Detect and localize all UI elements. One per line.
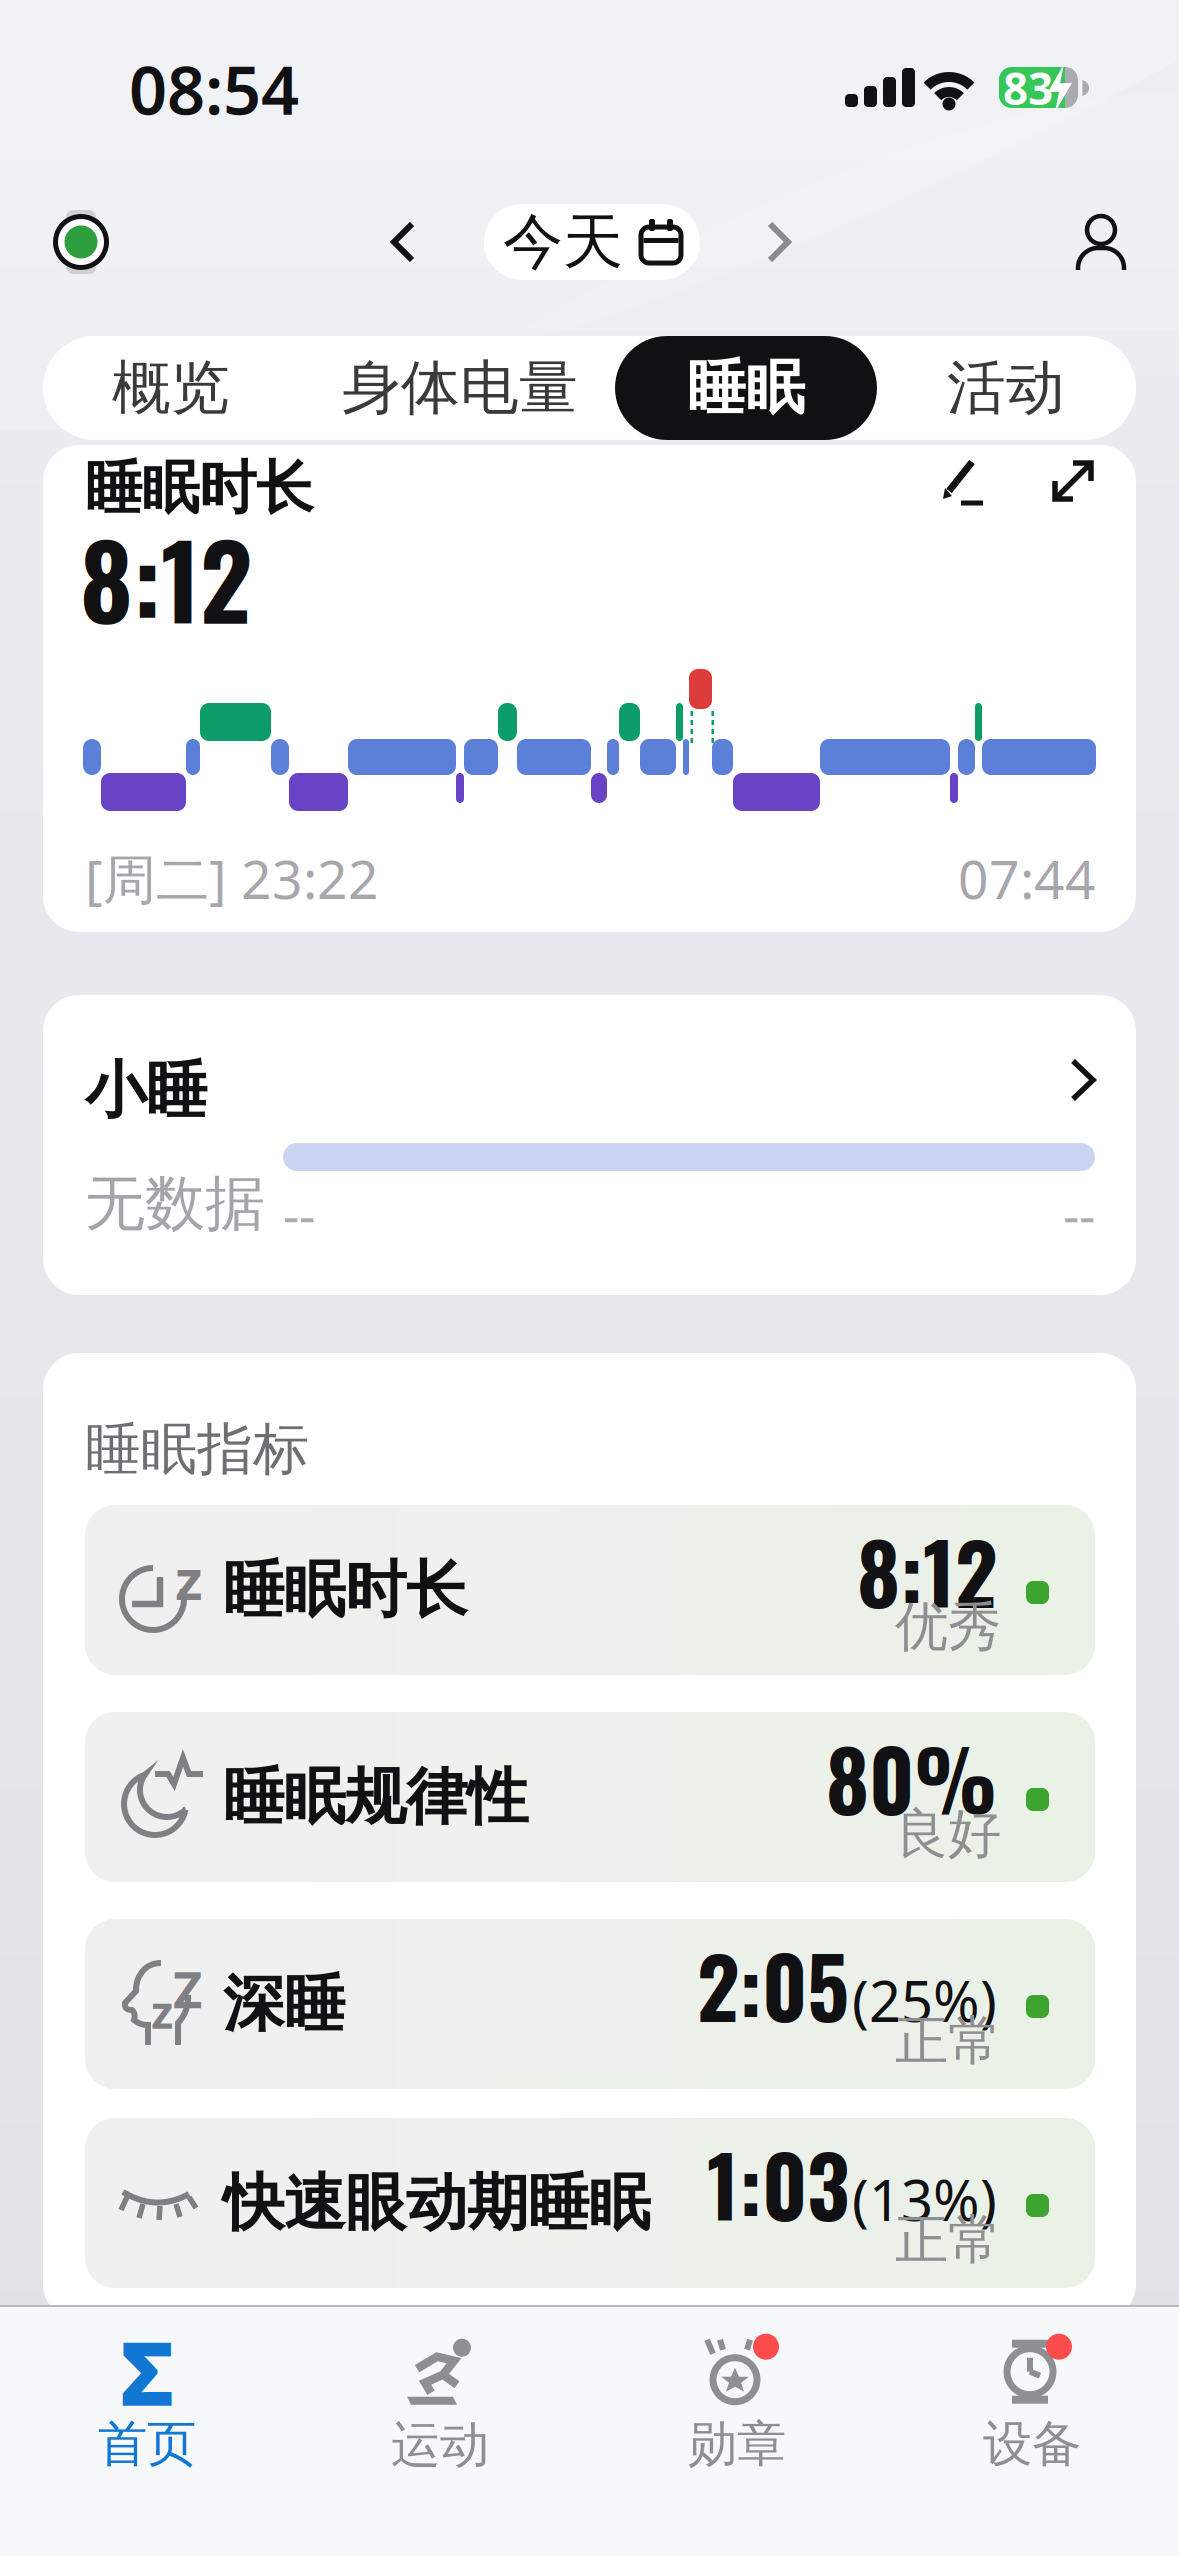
button[interactable]: 勋章 [617,2332,857,2482]
staticText: 正常 [895,2207,1001,2273]
staticText: (13%) [852,2162,997,2237]
button[interactable]: 身体电量 [310,336,610,440]
staticText: 睡眠时长 [223,1552,467,1628]
staticText: 概览 [112,352,230,424]
button[interactable]: 睡眠规律性 [85,1712,1095,1882]
button[interactable]: Edit [941,457,985,505]
staticText: 2:05 [697,1923,849,2046]
staticText: 8:12 [80,503,252,653]
staticText: Z [173,1955,202,2022]
button[interactable]: Σ [27,2332,267,2482]
staticText: 正常 [895,2008,1001,2074]
staticText: 8:12 [857,1509,997,1632]
button[interactable]: Expand [1051,459,1095,503]
button[interactable]: 活动 [886,336,1126,440]
staticText: 运动 [391,2415,489,2475]
button[interactable]: Next day [766,222,790,262]
staticText: -- [283,1181,315,1248]
button[interactable]: 今天 [484,204,700,280]
button[interactable]: Profile [1077,216,1125,272]
button[interactable]: 快速眼动期睡眠 [85,2118,1095,2288]
button[interactable]: 小睡 [43,995,1136,1295]
staticText: 睡眠时长 [85,453,313,523]
button[interactable]: Watch status [50,210,112,274]
staticText: 勋章 [688,2414,786,2474]
staticText: 首页 [98,2414,196,2474]
button[interactable]: 睡眠时长 [85,1505,1095,1675]
staticText: 优秀 [895,1594,1001,1660]
staticText: 1:03 [707,2122,849,2245]
staticText: 睡眠 [687,352,805,424]
button[interactable]: 深睡 [85,1919,1095,2089]
staticText: 07:44 [958,843,1096,914]
staticText: 80% [826,1716,997,1839]
staticText: Σ [120,2313,174,2430]
staticText: 快速眼动期睡眠 [223,2165,650,2241]
staticText: 无数据 [85,1167,265,1241]
staticText: 睡眠规律性 [223,1759,528,1835]
staticText: 活动 [947,352,1065,424]
staticText: 今天 [503,205,623,279]
staticText: (25%) [852,1963,997,2038]
staticText: 深睡 [223,1966,345,2042]
button[interactable]: 睡眠 [615,336,877,440]
staticText: 83 [1003,59,1053,117]
button[interactable]: 运动 [320,2332,560,2482]
staticText: 身体电量 [342,352,578,424]
staticText: 小睡 [85,1053,207,1128]
staticText: -- [1063,1181,1095,1248]
button[interactable]: 概览 [51,336,291,440]
button[interactable]: Previous day [392,222,416,262]
staticText: 良好 [895,1801,1001,1867]
staticText: z [151,1981,173,2041]
staticText: 08:54 [129,45,299,133]
staticText: 睡眠指标 [85,1415,309,1484]
staticText: [周二] 23:22 [85,843,379,914]
staticText: 设备 [983,2414,1081,2474]
staticText: z [175,1541,203,1615]
button[interactable]: 设备 [912,2332,1152,2482]
